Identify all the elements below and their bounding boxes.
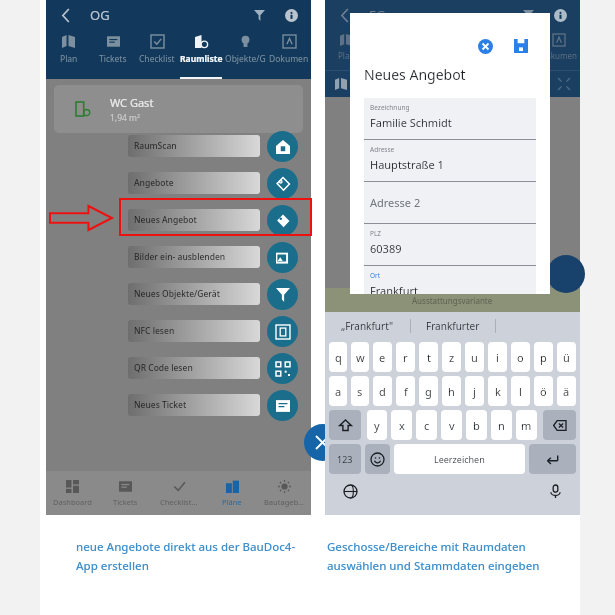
button[interactable]: ö	[534, 376, 553, 406]
button[interactable]: QR Code lesen	[267, 353, 298, 384]
button[interactable]: Info	[279, 3, 303, 27]
button[interactable]: e	[373, 342, 392, 372]
button[interactable]: c	[416, 410, 437, 440]
staticText: n	[498, 418, 505, 433]
button[interactable]: Raumliste	[451, 30, 494, 70]
button[interactable]: Filter	[516, 3, 540, 27]
button[interactable]: Checklist	[409, 30, 451, 70]
button[interactable]: RaumScan	[267, 131, 298, 162]
button[interactable]: x	[391, 410, 412, 440]
button[interactable]: Key	[529, 444, 576, 474]
button[interactable]: u	[465, 342, 484, 372]
button[interactable]: z	[442, 342, 461, 372]
staticText: Geschosse/Bereiche mit Raumdaten auswähl…	[327, 539, 577, 573]
button[interactable]: Adresse 2	[364, 182, 536, 224]
button[interactable]: m	[516, 410, 537, 440]
button[interactable]: Back	[54, 3, 78, 27]
button[interactable]: v	[441, 410, 462, 440]
button[interactable]: Pläne	[205, 471, 258, 515]
button[interactable]: Plan	[46, 30, 91, 79]
button[interactable]: Objekte/G	[223, 30, 267, 79]
staticText: h	[448, 384, 455, 399]
button[interactable]: i	[488, 342, 507, 372]
staticText: WC Gast	[110, 95, 154, 110]
staticText: Neues Angebot	[364, 65, 466, 84]
button[interactable]: s	[351, 376, 369, 406]
button[interactable]: Close menu	[304, 424, 341, 461]
button[interactable]: Cancel	[474, 35, 496, 57]
button[interactable]: Neues Angebot	[267, 205, 298, 236]
button[interactable]: Change language	[339, 480, 361, 502]
button[interactable]: NFC lesen	[267, 316, 298, 347]
button[interactable]: Save	[510, 35, 532, 57]
button[interactable]: Neues Ticket	[128, 394, 260, 416]
button[interactable]: y	[367, 410, 387, 440]
button[interactable]: Bilder ein- ausblenden	[267, 242, 298, 273]
button[interactable]: Leerzeichen	[394, 444, 525, 474]
button[interactable]: Menu	[547, 255, 585, 293]
button[interactable]: Key	[543, 410, 576, 440]
button[interactable]: Back	[333, 3, 357, 27]
button[interactable]: Tickets	[91, 30, 135, 79]
button[interactable]: Adresse	[364, 140, 536, 182]
button[interactable]: t	[419, 342, 438, 372]
button[interactable]: Frankfurter	[411, 312, 495, 340]
button[interactable]: ü	[557, 342, 576, 372]
button[interactable]: p	[534, 342, 553, 372]
button[interactable]: Checklist	[135, 30, 179, 79]
staticText: m	[521, 418, 532, 433]
button[interactable]: Bezeichnung	[364, 98, 536, 140]
button[interactable]: a	[329, 376, 347, 406]
button[interactable]: n	[491, 410, 512, 440]
button[interactable]: 123	[329, 444, 361, 474]
button[interactable]: g	[419, 376, 438, 406]
button[interactable]: NFC lesen	[128, 320, 260, 342]
button[interactable]: Neues Ticket	[267, 390, 298, 421]
button[interactable]: Ort	[364, 266, 536, 294]
button[interactable]: Key	[365, 444, 390, 474]
button[interactable]: Checklist…	[152, 471, 205, 515]
button[interactable]: QR Code lesen	[128, 357, 260, 379]
button[interactable]: Voice input	[544, 480, 566, 502]
button[interactable]: WC Gast	[54, 85, 303, 133]
button[interactable]: Filter	[247, 3, 271, 27]
button[interactable]: Plan	[325, 30, 367, 70]
button[interactable]: „Frankfurt"	[325, 312, 410, 340]
button[interactable]: Tickets	[99, 471, 152, 515]
button[interactable]: q	[329, 342, 347, 372]
button[interactable]: Info	[548, 3, 572, 27]
button[interactable]: Neues Objekte/Gerät	[128, 283, 260, 305]
button[interactable]: Objekte/G	[494, 30, 537, 70]
button[interactable]: b	[466, 410, 487, 440]
button[interactable]: f	[396, 376, 415, 406]
button[interactable]: RaumScan	[128, 135, 260, 157]
button[interactable]: ä	[557, 376, 576, 406]
button[interactable]: Neues Objekte/Gerät	[267, 279, 298, 310]
staticText: 60389	[370, 241, 402, 256]
staticText: o	[517, 350, 524, 365]
button[interactable]: Dashboard	[46, 471, 99, 515]
button[interactable]: Dokumen	[537, 30, 580, 70]
button[interactable]: Dokumen	[267, 30, 311, 79]
button[interactable]: Neues Angebot	[128, 209, 260, 231]
button[interactable]: r	[396, 342, 415, 372]
button[interactable]: Bautageb…	[258, 471, 311, 515]
button[interactable]: d	[373, 376, 392, 406]
button[interactable]: w	[351, 342, 369, 372]
staticText: x	[399, 418, 405, 433]
button[interactable]: Angebote	[128, 172, 260, 194]
button[interactable]: Bilder ein- ausblenden	[128, 246, 260, 268]
button[interactable]: o	[511, 342, 530, 372]
staticText: EG	[369, 6, 386, 24]
button[interactable]: Angebote	[267, 168, 298, 199]
button[interactable]: k	[488, 376, 507, 406]
button[interactable]: Raumliste	[179, 30, 223, 79]
staticText: Ort	[370, 271, 381, 280]
button[interactable]: l	[511, 376, 530, 406]
button[interactable]: h	[442, 376, 461, 406]
button[interactable]: Key	[329, 410, 361, 440]
button[interactable]: j	[465, 376, 484, 406]
button[interactable]: PLZ	[364, 224, 536, 266]
